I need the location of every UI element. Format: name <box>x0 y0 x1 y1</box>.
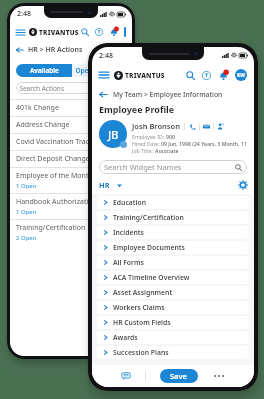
button[interactable]: Incidents <box>97 226 249 239</box>
button[interactable]: Awards <box>97 331 249 344</box>
staticText: TRIVANTUS <box>125 71 165 80</box>
button[interactable]: Help <box>202 71 211 80</box>
button[interactable]: Employee Documents <box>97 241 249 254</box>
staticText: Search Widget Names <box>104 162 182 172</box>
staticText: Josh Bronson <box>132 121 180 131</box>
staticText: Available <box>30 66 59 75</box>
button[interactable]: Org chart <box>217 123 224 130</box>
button[interactable]: Covid Vaccination Tracking <box>10 133 132 150</box>
button[interactable]: Save <box>160 369 198 383</box>
button[interactable]: Training/Certification <box>10 219 132 245</box>
staticText: Direct Deposit Change <box>16 154 90 164</box>
staticText: Education <box>113 198 146 207</box>
button[interactable]: TRIVANTUS <box>114 71 176 80</box>
button[interactable]: Notifications <box>218 70 229 81</box>
staticText: 1 Open <box>16 182 37 190</box>
button[interactable]: Search <box>186 71 195 80</box>
button[interactable]: Succession Plans <box>97 346 249 359</box>
staticText: Job Title: <box>132 147 155 154</box>
staticText: 2 Open <box>16 234 37 242</box>
staticText: 401k Change <box>16 103 59 113</box>
staticText: HR > HR Actions <box>28 45 83 55</box>
button[interactable]: Help <box>95 28 103 36</box>
staticText: My Team > Employee Information <box>113 90 223 99</box>
button[interactable]: Back <box>16 46 24 54</box>
staticText: Save <box>170 371 188 381</box>
staticText: 1 Open <box>16 208 37 216</box>
button[interactable]: All Forms <box>97 256 249 269</box>
button[interactable]: Asset Assignment <box>97 286 249 299</box>
button[interactable]: Back <box>99 90 108 99</box>
staticText: Associate <box>155 147 179 154</box>
staticText: HR Custom Fields <box>113 318 171 327</box>
button[interactable]: Menu <box>99 70 109 80</box>
staticText: Covid Vaccination Tracking <box>16 137 104 147</box>
staticText: Handbook Authorization <box>16 197 97 207</box>
button[interactable]: Profile <box>124 27 126 37</box>
staticText: KW <box>237 72 246 79</box>
staticText: Employee Profile <box>99 103 175 115</box>
button[interactable]: Handbook Authorization <box>10 193 132 219</box>
staticText: JB <box>108 127 119 142</box>
button[interactable]: Comments <box>121 371 131 381</box>
button[interactable]: More options <box>212 373 226 379</box>
button[interactable]: Edit photo <box>120 141 127 148</box>
staticText: TRIVANTUS <box>39 28 79 36</box>
button[interactable]: TRIVANTUS <box>29 28 81 36</box>
staticText: 900 <box>166 133 175 140</box>
button[interactable]: ACA Timeline Overview <box>97 271 249 284</box>
staticText: All Forms <box>113 258 144 267</box>
staticText: Incidents <box>113 228 144 237</box>
staticText: HR <box>99 180 110 190</box>
staticText: Asset Assignment <box>113 288 173 297</box>
button[interactable]: Open <box>72 64 132 77</box>
button[interactable]: Notifications <box>109 27 119 37</box>
button[interactable]: Education <box>97 196 249 209</box>
button[interactable]: Menu <box>16 28 25 37</box>
button[interactable]: 401k Change <box>10 99 132 116</box>
button[interactable]: Training/Certification <box>97 211 249 224</box>
button[interactable]: Search <box>81 28 89 36</box>
staticText: Search Actions <box>16 84 65 93</box>
button[interactable]: HR <box>99 180 122 190</box>
button[interactable]: Search Actions <box>16 82 126 94</box>
staticText: Workers Claims <box>113 303 165 312</box>
staticText: Awards <box>113 333 138 342</box>
staticText: 2:48 <box>17 9 31 19</box>
staticText: ACA Timeline Overview <box>113 273 190 282</box>
staticText: Employee ID: <box>132 133 166 140</box>
button[interactable]: HR Custom Fields <box>97 316 249 329</box>
staticText: 2:48 <box>99 51 113 61</box>
button[interactable]: Call <box>189 123 196 130</box>
button[interactable]: Address Change <box>10 116 132 133</box>
staticText: Employee Documents <box>113 243 185 252</box>
button[interactable]: Settings <box>239 181 247 189</box>
staticText: Employee of the Month N <box>16 171 100 181</box>
button[interactable]: Available <box>16 64 72 77</box>
staticText: Training/Certification <box>16 223 86 233</box>
button[interactable]: Direct Deposit Change <box>10 150 132 167</box>
staticText: Open <box>72 66 93 75</box>
button[interactable]: Profile <box>235 69 247 81</box>
staticText: Succession Plans <box>113 348 169 357</box>
staticText: Address Change <box>16 120 70 130</box>
button[interactable]: Employee of the Month N <box>10 167 132 193</box>
staticText: 09 Jun, 1998 (24 Years, 3 Month, 11 Days… <box>161 140 247 147</box>
staticText: Training/Certification <box>113 213 184 222</box>
button[interactable]: Search <box>235 164 242 171</box>
button[interactable]: Search Widget Names <box>104 160 242 174</box>
staticText: Hired Date: <box>132 140 161 147</box>
button[interactable]: Back <box>99 86 247 102</box>
button[interactable]: Email <box>203 123 210 130</box>
button[interactable]: Workers Claims <box>97 301 249 314</box>
